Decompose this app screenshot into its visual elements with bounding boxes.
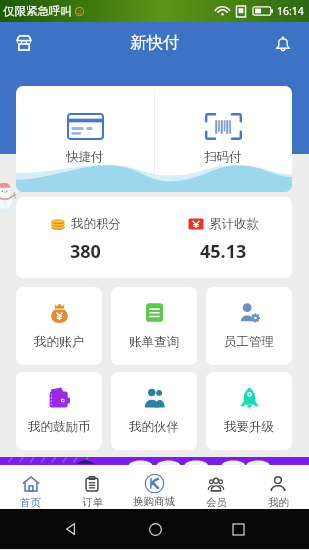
staticText: 我要升级 (224, 419, 274, 435)
staticText: 员工管理 (224, 334, 274, 350)
staticText: 我的鼓励币 (28, 419, 91, 435)
staticText: 45.13 (200, 239, 247, 264)
staticText: 我的积分 (71, 216, 121, 232)
button[interactable]: 累计收款 (154, 197, 292, 264)
button[interactable]: 账单查询 (111, 287, 197, 365)
staticText: 换购商城 (133, 495, 175, 508)
button[interactable]: 员工管理 (206, 287, 292, 365)
button[interactable]: Store (13, 32, 35, 54)
staticText: 仅限紧急呼叫 (3, 4, 72, 18)
button[interactable]: Home (142, 516, 168, 542)
button[interactable]: 首页 (0, 466, 61, 509)
staticText: 会员 (206, 496, 227, 509)
button[interactable]: 我要升级 (206, 372, 292, 450)
button[interactable]: 我的 (247, 466, 309, 509)
button[interactable]: 扫码付 (154, 86, 292, 165)
button[interactable]: Recents (225, 516, 251, 542)
staticText: 账单查询 (129, 334, 179, 350)
button[interactable]: 我的账户 (16, 287, 102, 365)
staticText: 380 (70, 239, 101, 264)
button[interactable]: 换购商城 (123, 466, 185, 508)
staticText: 首页 (20, 496, 41, 509)
button[interactable]: Notifications (272, 32, 294, 54)
button[interactable]: 会员 (185, 466, 247, 509)
button[interactable]: 我的伙伴 (111, 372, 197, 450)
button[interactable]: 我的鼓励币 (16, 372, 102, 450)
staticText: 我的账户 (34, 334, 84, 350)
staticText: 订单 (82, 496, 103, 509)
staticText: 我的 (268, 496, 289, 509)
staticText: 快捷付 (66, 149, 104, 165)
staticText: 扫码付 (204, 149, 242, 165)
staticText: 16:14 (277, 4, 304, 18)
staticText: 我的伙伴 (129, 419, 179, 435)
button[interactable]: 我的积分 (16, 197, 154, 264)
button[interactable]: 快捷付 (16, 86, 154, 165)
button[interactable]: Back (58, 516, 84, 542)
button[interactable]: 订单 (61, 466, 123, 509)
staticText: 累计收款 (209, 216, 259, 232)
staticText: 新快付 (130, 32, 180, 53)
